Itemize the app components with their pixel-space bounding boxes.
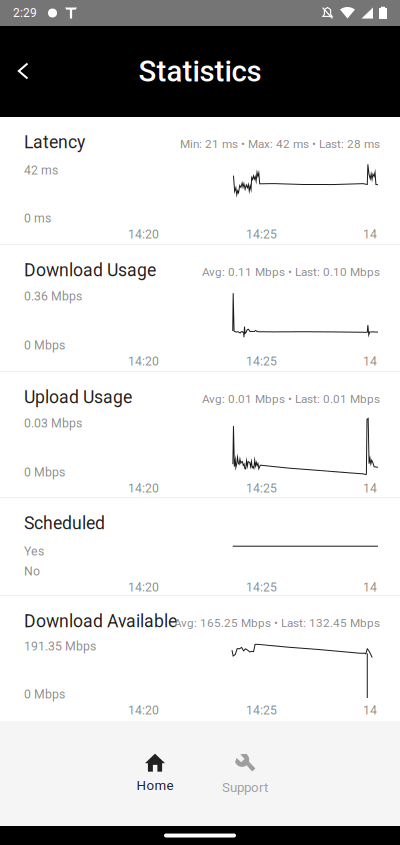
staticText: 14:20 <box>128 227 159 241</box>
staticText: Yes <box>24 544 44 558</box>
staticText: 42 ms <box>24 163 58 177</box>
staticText: Download Available <box>24 611 177 632</box>
staticText: 14:25 <box>246 703 277 717</box>
button[interactable]: Support <box>200 743 290 803</box>
staticText: Home <box>136 778 173 793</box>
staticText: Avg: 0.11 Mbps • Last: 0.10 Mbps <box>202 265 380 279</box>
staticText: Avg: 165.25 Mbps • Last: 132.45 Mbps <box>174 616 380 630</box>
staticText: 0 Mbps <box>24 465 65 479</box>
staticText: 14:25 <box>246 580 277 594</box>
staticText: 0 Mbps <box>24 338 65 352</box>
staticText: Min: 21 ms • Max: 42 ms • Last: 28 ms <box>180 137 380 151</box>
button[interactable]: Home <box>110 743 200 803</box>
staticText: 14:20 <box>128 354 159 368</box>
staticText: 14:30 <box>363 227 394 241</box>
staticText: 0.03 Mbps <box>24 416 82 430</box>
staticText: 14:25 <box>246 227 277 241</box>
staticText: 14:25 <box>246 354 277 368</box>
staticText: 0 Mbps <box>24 687 65 701</box>
staticText: No <box>24 564 40 578</box>
staticText: 14:20 <box>128 580 159 594</box>
staticText: 14:30 <box>363 580 394 594</box>
staticText: Download Usage <box>24 260 156 281</box>
staticText: 14:20 <box>128 481 159 495</box>
staticText: 2:29 <box>13 6 37 20</box>
staticText: 191.35 Mbps <box>24 639 96 653</box>
staticText: Scheduled <box>24 513 105 534</box>
staticText: 14:30 <box>363 354 394 368</box>
staticText: 0.36 Mbps <box>24 289 82 303</box>
staticText: Avg: 0.01 Mbps • Last: 0.01 Mbps <box>202 392 380 406</box>
button[interactable]: Back <box>0 43 47 99</box>
staticText: Support <box>222 780 268 795</box>
staticText: 14:20 <box>128 703 159 717</box>
staticText: 0 ms <box>24 211 51 225</box>
staticText: Upload Usage <box>24 387 132 408</box>
staticText: Latency <box>24 132 85 153</box>
staticText: 14:25 <box>246 481 277 495</box>
staticText: 14:30 <box>363 703 394 717</box>
staticText: 14:30 <box>363 481 394 495</box>
staticText: Statistics <box>138 54 261 89</box>
